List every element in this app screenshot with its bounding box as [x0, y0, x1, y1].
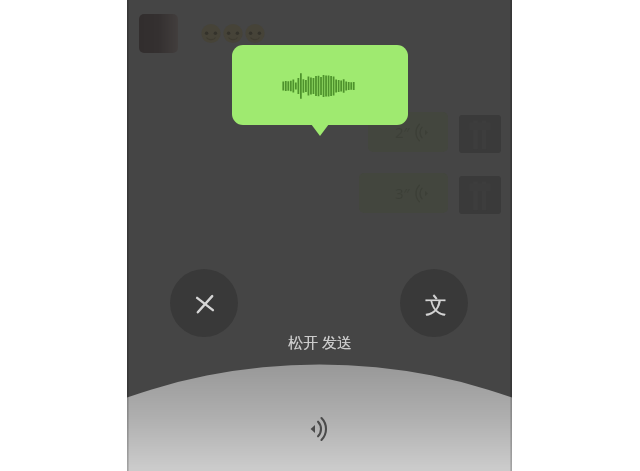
staticText: 2″ [395, 122, 410, 142]
button[interactable]: Voice input [305, 411, 339, 445]
button[interactable]: 2″ [368, 112, 448, 152]
button[interactable]: Convert to text [400, 269, 468, 337]
staticText: 松开 发送 [288, 332, 352, 352]
button[interactable]: Cancel recording [170, 269, 238, 337]
staticText: 文 [425, 292, 447, 320]
button[interactable]: Contact avatar [139, 14, 178, 53]
